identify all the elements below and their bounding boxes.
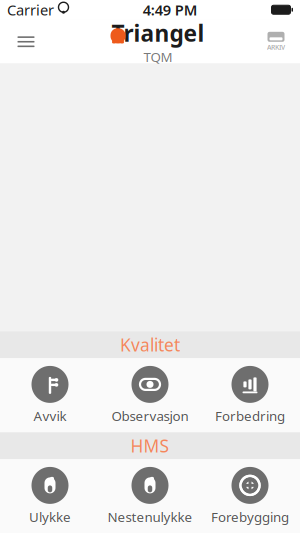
staticText: Carrier (7, 0, 54, 19)
button[interactable]: Avvik (0, 358, 100, 433)
staticText: Triangel (111, 18, 204, 48)
button[interactable]: Nestenulykke (100, 459, 200, 533)
staticText: Forebygging (211, 508, 289, 526)
button[interactable]: Menu (4, 22, 48, 62)
staticText: Ulykke (29, 508, 71, 526)
staticText: Nestenulykke (107, 508, 192, 526)
button[interactable]: Ulykke (0, 459, 100, 533)
staticText: Kvalitet (120, 333, 180, 356)
button[interactable]: Forbedring (200, 358, 300, 433)
staticText: Forbedring (215, 407, 285, 425)
staticText: Observasjon (111, 407, 188, 425)
staticText: ARKIV (267, 43, 285, 52)
staticText: TQM (143, 48, 172, 66)
button[interactable]: Arkiv (256, 22, 296, 62)
staticText: HMS (130, 434, 169, 457)
staticText: Avvik (33, 407, 66, 425)
staticText: 4:49 PM (143, 0, 198, 19)
button[interactable]: Observasjon (100, 358, 200, 433)
button[interactable]: Forebygging (200, 459, 300, 533)
